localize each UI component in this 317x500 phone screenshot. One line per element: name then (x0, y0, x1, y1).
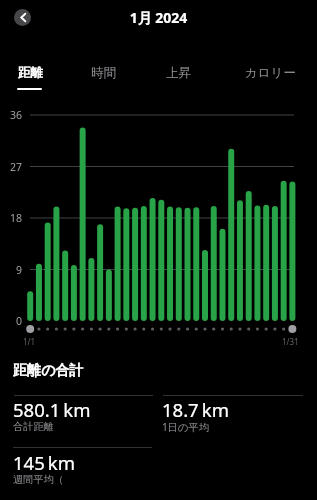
staticText: 1/31 (282, 336, 299, 347)
button[interactable]: カロリー (238, 59, 302, 87)
staticText: カロリー (245, 65, 296, 81)
button[interactable]: 時間 (71, 59, 135, 87)
staticText: 距離の合計 (13, 362, 84, 380)
staticText: 時間 (91, 65, 116, 81)
staticText: 距離 (18, 65, 43, 81)
staticText: 週間平均（ (13, 473, 64, 486)
staticText: 36 (10, 108, 23, 122)
staticText: 合計距離 (13, 420, 54, 433)
staticText: 1月 2024 (0, 8, 317, 27)
button[interactable]: Back (14, 9, 31, 26)
button[interactable]: 距離 (0, 59, 62, 87)
staticText: 9 (16, 263, 23, 277)
staticText: 1日の平均 (162, 420, 209, 434)
staticText: 18 (10, 211, 23, 225)
staticText: 27 (10, 160, 23, 174)
staticText: 1/1 (23, 336, 36, 347)
button[interactable]: 上昇 (146, 59, 210, 87)
staticText: 上昇 (166, 65, 191, 81)
staticText: 18.7 km (162, 397, 229, 422)
staticText: 580.1 km (13, 397, 91, 422)
staticText: 145 km (13, 450, 75, 475)
staticText: 0 (16, 314, 23, 328)
